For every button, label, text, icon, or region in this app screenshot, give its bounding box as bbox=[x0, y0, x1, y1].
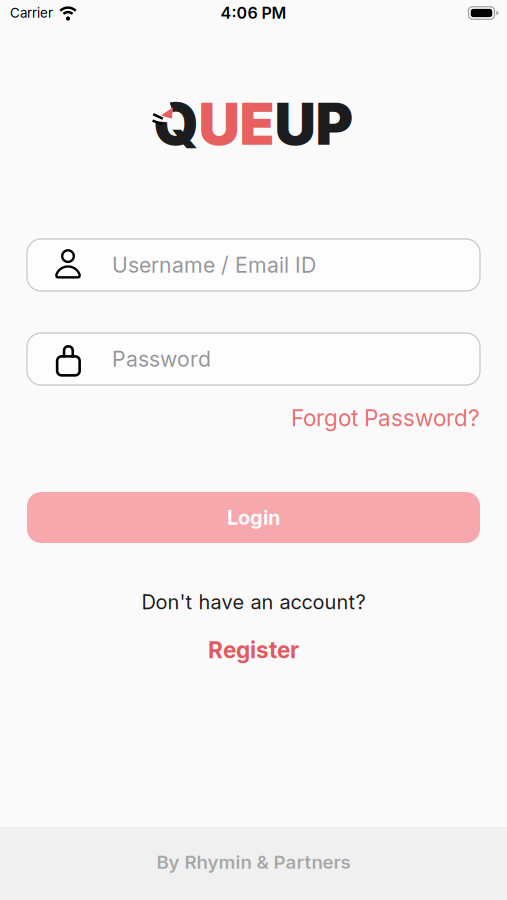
staticText: UE bbox=[198, 90, 274, 158]
staticText: Forgot Password? bbox=[291, 405, 480, 431]
staticText: Carrier bbox=[10, 5, 53, 21]
button[interactable]: Forgot Password? bbox=[291, 405, 480, 431]
staticText: Login bbox=[227, 506, 280, 529]
staticText: 4:06 PM bbox=[220, 4, 286, 22]
button[interactable]: Login bbox=[27, 492, 480, 543]
staticText: Don't have an account? bbox=[141, 590, 365, 614]
staticText: Q bbox=[153, 90, 198, 158]
button[interactable]: Register bbox=[208, 635, 299, 665]
staticText: Password bbox=[112, 346, 211, 372]
staticText: By Rhymin & Partners bbox=[156, 851, 350, 873]
staticText: Username / Email ID bbox=[112, 252, 316, 278]
staticText: UP bbox=[274, 90, 353, 158]
staticText: Register bbox=[208, 637, 299, 663]
